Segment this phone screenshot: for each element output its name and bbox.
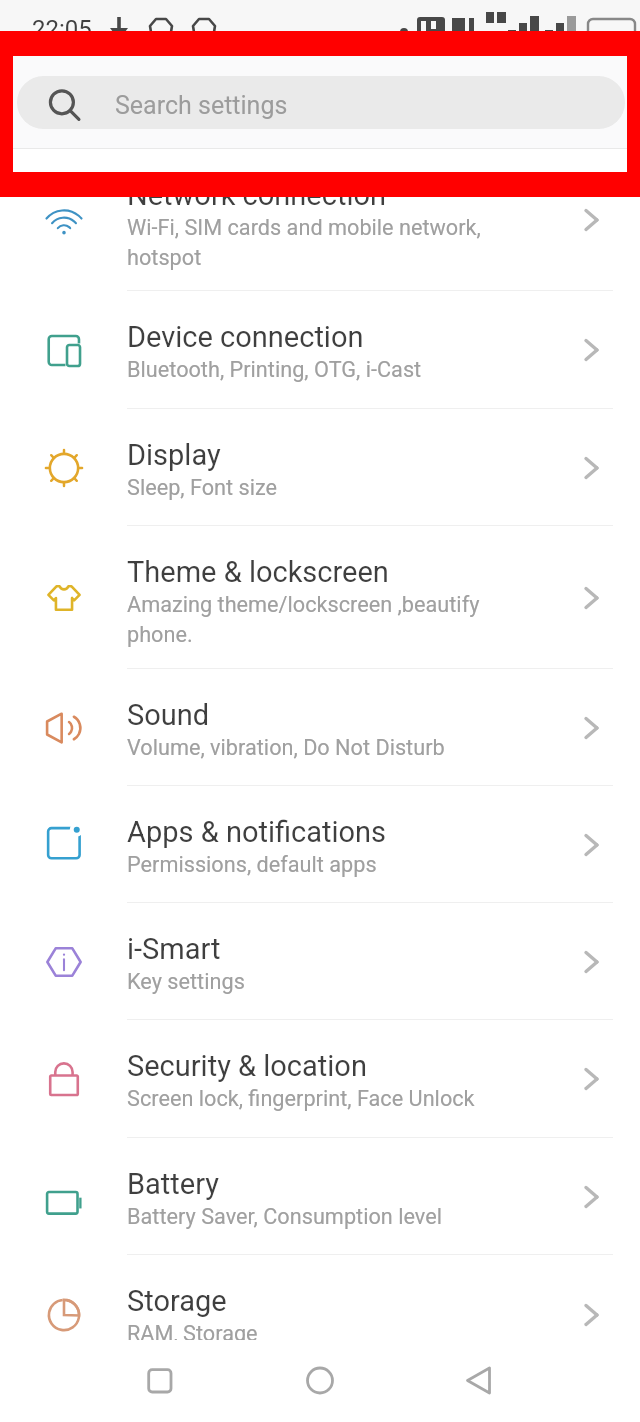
staticText: Apps & notifications [127, 815, 387, 849]
button[interactable]: Device connection [0, 291, 640, 409]
staticText: Key settings [127, 969, 245, 994]
staticText: Sound [127, 698, 210, 732]
button[interactable]: Recent apps [120, 1340, 200, 1422]
button[interactable]: Apps & notifications [0, 786, 640, 903]
staticText: i-Smart [127, 932, 221, 966]
staticText: hotspot [127, 245, 202, 270]
button[interactable]: Back [439, 1340, 519, 1422]
staticText: Screen lock, fingerprint, Face Unlock [127, 1086, 475, 1111]
button[interactable]: Storage [0, 1255, 640, 1375]
staticText: Device connection [127, 320, 364, 354]
button[interactable]: Display [0, 409, 640, 526]
staticText: Volume, vibration, Do Not Disturb [127, 735, 445, 760]
staticText: Storage [127, 1284, 227, 1318]
staticText: Search settings [115, 91, 288, 120]
staticText: Network connection [127, 178, 387, 212]
staticText: RAM, Storage [127, 1321, 258, 1346]
button[interactable]: Security & location [0, 1020, 640, 1138]
button[interactable]: Search settings [17, 76, 625, 129]
staticText: Display [127, 438, 221, 472]
staticText: Battery [127, 1167, 219, 1201]
button[interactable]: Network connection [0, 149, 640, 291]
staticText: Battery Saver, Consumption level [127, 1204, 442, 1229]
staticText: Wi-Fi, SIM cards and mobile network, [127, 215, 481, 240]
staticText: Permissions, default apps [127, 852, 377, 877]
button[interactable]: i-Smart [0, 903, 640, 1020]
staticText: Amazing theme/lockscreen ,beautify [127, 592, 480, 617]
button[interactable]: Home [280, 1340, 360, 1422]
button[interactable]: Sound [0, 669, 640, 786]
staticText: Sleep, Font size [127, 475, 278, 500]
staticText: Security & location [127, 1049, 367, 1083]
button[interactable]: Battery [0, 1138, 640, 1255]
staticText: Theme & lockscreen [127, 555, 389, 589]
staticText: phone. [127, 622, 193, 647]
staticText: 22:05 [32, 15, 92, 43]
staticText: Bluetooth, Printing, OTG, i-Cast [127, 357, 422, 382]
button[interactable]: Theme & lockscreen [0, 526, 640, 669]
